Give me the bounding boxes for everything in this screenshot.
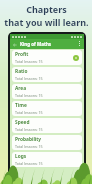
staticText: Time — [15, 102, 27, 109]
staticText: Total lessons: 15 — [15, 161, 43, 166]
staticText: Total lessons: 15 — [15, 93, 43, 98]
staticText: Total lessons: 15 — [15, 110, 43, 115]
button[interactable]: Speed — [12, 118, 82, 133]
button[interactable]: Ratio — [12, 67, 82, 82]
staticText: Profit — [15, 51, 29, 58]
button[interactable]: Profit — [12, 50, 82, 65]
button[interactable]: Probability — [12, 135, 82, 150]
button[interactable]: Back — [10, 40, 19, 49]
staticText: Ratio — [15, 68, 28, 75]
staticText: Logs — [15, 153, 27, 160]
staticText: Total lessons: 15 — [15, 76, 43, 81]
staticText: Probability — [15, 136, 42, 143]
button[interactable]: More options — [75, 40, 83, 48]
staticText: King of Maths — [20, 41, 52, 47]
button[interactable]: Area — [12, 84, 82, 99]
staticText: Total lessons: 15 — [15, 144, 43, 149]
staticText: Chapters — [26, 3, 67, 15]
staticText: that you will learn. — [4, 16, 89, 28]
button[interactable]: Logs — [12, 152, 82, 167]
staticText: Total lessons: 15 — [15, 127, 43, 132]
button[interactable]: Time — [12, 101, 82, 116]
staticText: Area — [15, 85, 27, 92]
staticText: Total lessons: 15 — [15, 59, 43, 64]
staticText: Speed — [15, 119, 30, 126]
